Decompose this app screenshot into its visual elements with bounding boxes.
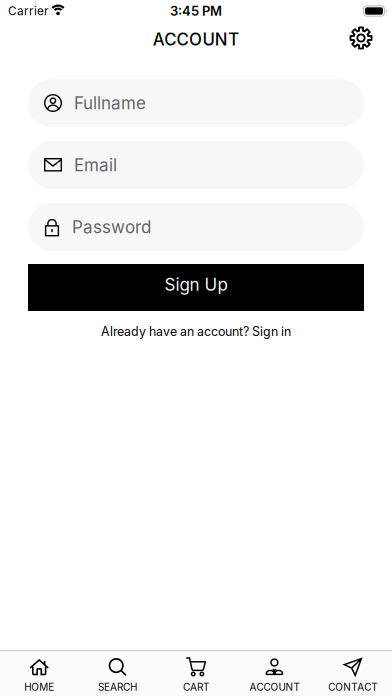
staticText: Fullname (74, 93, 146, 113)
staticText: Sign Up (164, 274, 227, 295)
button[interactable]: CART (157, 651, 235, 693)
button[interactable]: SEARCH (78, 651, 157, 693)
staticText: Password (72, 217, 151, 237)
button[interactable]: ACCOUNT (235, 651, 314, 693)
button[interactable]: Sign Up (28, 264, 364, 311)
staticText: Email (74, 155, 117, 175)
staticText: SEARCH (98, 681, 137, 693)
staticText: Already have an account? Sign in (101, 324, 291, 339)
staticText: CART (183, 681, 209, 693)
button[interactable]: Already have an account? Sign in (101, 324, 291, 339)
button[interactable]: CONTACT (314, 651, 392, 693)
button[interactable]: Settings (349, 26, 373, 53)
staticText: CONTACT (328, 681, 377, 693)
button[interactable]: HOME (0, 651, 78, 693)
staticText: ACCOUNT (249, 681, 299, 693)
staticText: Carrier (8, 4, 48, 18)
staticText: HOME (24, 681, 54, 693)
staticText: ACCOUNT (153, 29, 239, 50)
staticText: 3:45 PM (170, 3, 222, 19)
